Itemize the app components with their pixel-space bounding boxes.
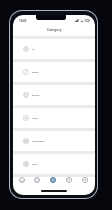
staticText: Health (32, 117, 39, 120)
button[interactable]: Design (13, 62, 95, 82)
staticText: Design (32, 71, 39, 74)
staticText: Photography (32, 140, 45, 143)
button[interactable]: Fashion (13, 85, 95, 105)
button[interactable]: Search (61, 174, 77, 185)
button[interactable]: Profile (77, 174, 93, 185)
staticText: Category (47, 27, 62, 31)
button[interactable]: Categories (45, 174, 61, 185)
staticText: Sports (32, 163, 39, 166)
button[interactable]: Art (13, 39, 95, 59)
staticText: Fashion (32, 94, 40, 97)
button[interactable]: Saved (29, 174, 45, 185)
button[interactable]: Sports (13, 154, 95, 174)
staticText: Art (32, 48, 35, 51)
button[interactable]: Home (14, 174, 29, 185)
staticText: 10:43 (19, 19, 27, 23)
button[interactable]: Health (13, 108, 95, 128)
button[interactable]: Photography (13, 131, 95, 151)
